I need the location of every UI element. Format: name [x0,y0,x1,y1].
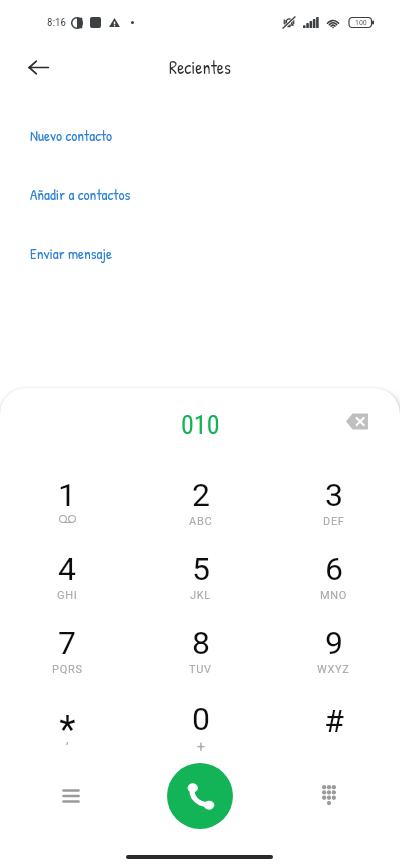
button[interactable]: # [267,702,400,776]
button[interactable]: Añadir a contactos [0,172,400,216]
staticText: 7 [58,624,76,662]
button[interactable]: Call [167,763,233,829]
staticText: 8:16 [47,16,66,29]
staticText: 3 [325,476,343,514]
button[interactable]: 1 [0,478,134,552]
staticText: Recientes [169,55,231,79]
staticText: 9 [325,624,343,662]
button[interactable]: Enviar mensaje [0,231,400,275]
staticText: 6 [325,550,343,588]
button[interactable]: 2 [134,478,267,552]
staticText: DEF [323,515,345,528]
button[interactable]: 6 [267,552,400,626]
staticText: PQRS [52,663,83,676]
staticText: + [197,739,205,755]
button[interactable]: Keypad [307,772,351,816]
button[interactable]: 4 [0,552,134,626]
button[interactable]: 8 [134,626,267,702]
staticText: Nuevo contacto [30,125,113,145]
button[interactable]: Backspace [336,400,378,442]
staticText: Enviar mensaje [30,243,112,263]
staticText: WXYZ [317,663,350,676]
staticText: 5 [192,550,210,588]
staticText: Añadir a contactos [30,184,131,204]
button[interactable]: * [0,702,134,776]
button[interactable]: Nuevo contacto [0,113,400,157]
staticText: 010 [181,410,220,440]
staticText: * [59,708,76,753]
staticText: 2 [192,476,210,514]
staticText: MNO [320,589,348,602]
staticText: 100 [355,19,367,27]
staticText: ABC [189,515,213,528]
button[interactable]: 0 [134,702,267,776]
button[interactable]: 5 [134,552,267,626]
button[interactable]: Back [16,45,60,89]
button[interactable]: 3 [267,478,400,552]
staticText: 1 [58,476,76,514]
staticText: JKL [190,589,211,602]
staticText: # [324,702,344,740]
staticText: 4 [58,550,76,588]
staticText: TUV [189,663,212,676]
button[interactable]: 9 [267,626,400,702]
button[interactable]: 7 [0,626,134,702]
staticText: GHI [57,589,78,602]
staticText: , [66,731,69,746]
button[interactable]: Call log [49,774,93,818]
staticText: 0 [192,700,210,738]
staticText: 8 [192,624,210,662]
